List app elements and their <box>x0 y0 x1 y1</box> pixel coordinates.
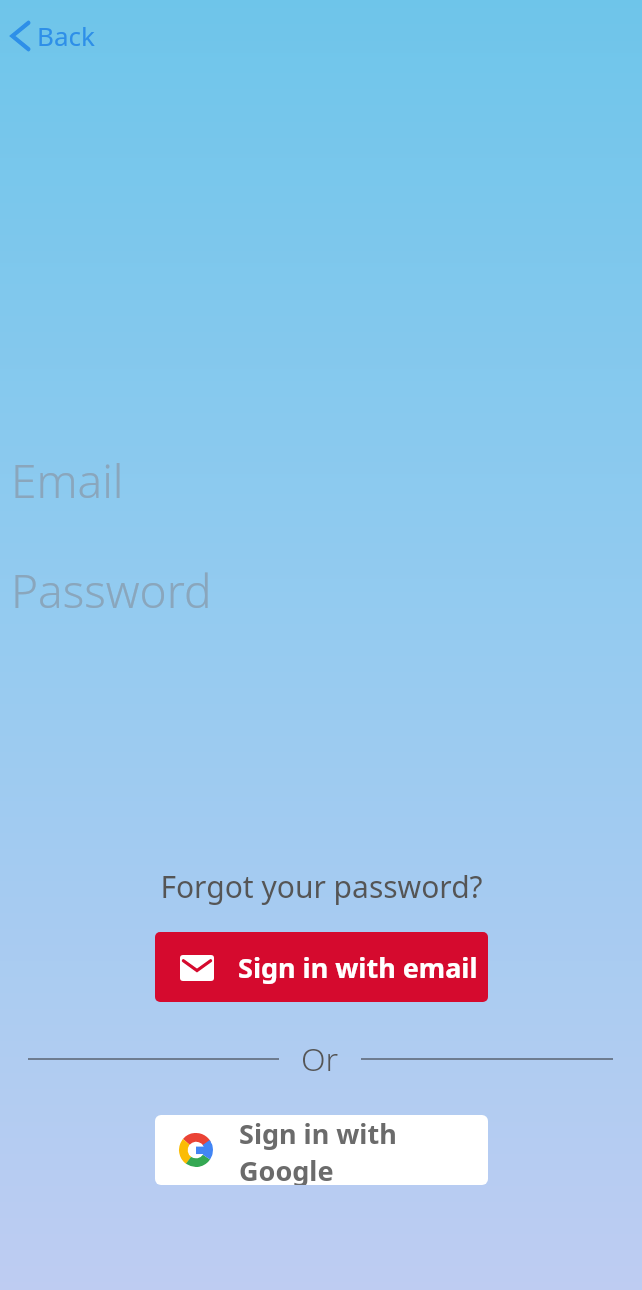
button[interactable]: Forgot your password? <box>150 862 493 911</box>
button[interactable]: Email <box>155 932 488 1002</box>
button[interactable]: Email <box>0 449 642 511</box>
staticText: Or <box>301 1037 339 1081</box>
button[interactable]: Back <box>4 12 101 59</box>
staticText: Sign in with email <box>238 949 478 986</box>
staticText: Sign in with Google <box>239 1115 488 1185</box>
button[interactable]: Password <box>0 559 642 621</box>
staticText: Forgot your password? <box>160 866 483 907</box>
staticText: Email <box>11 449 124 511</box>
other: Email <box>180 955 214 981</box>
other: Sign in with Google <box>179 1133 213 1167</box>
staticText: Back <box>37 18 95 53</box>
staticText: Password <box>11 559 212 621</box>
button[interactable]: Sign in with Google <box>155 1115 488 1185</box>
